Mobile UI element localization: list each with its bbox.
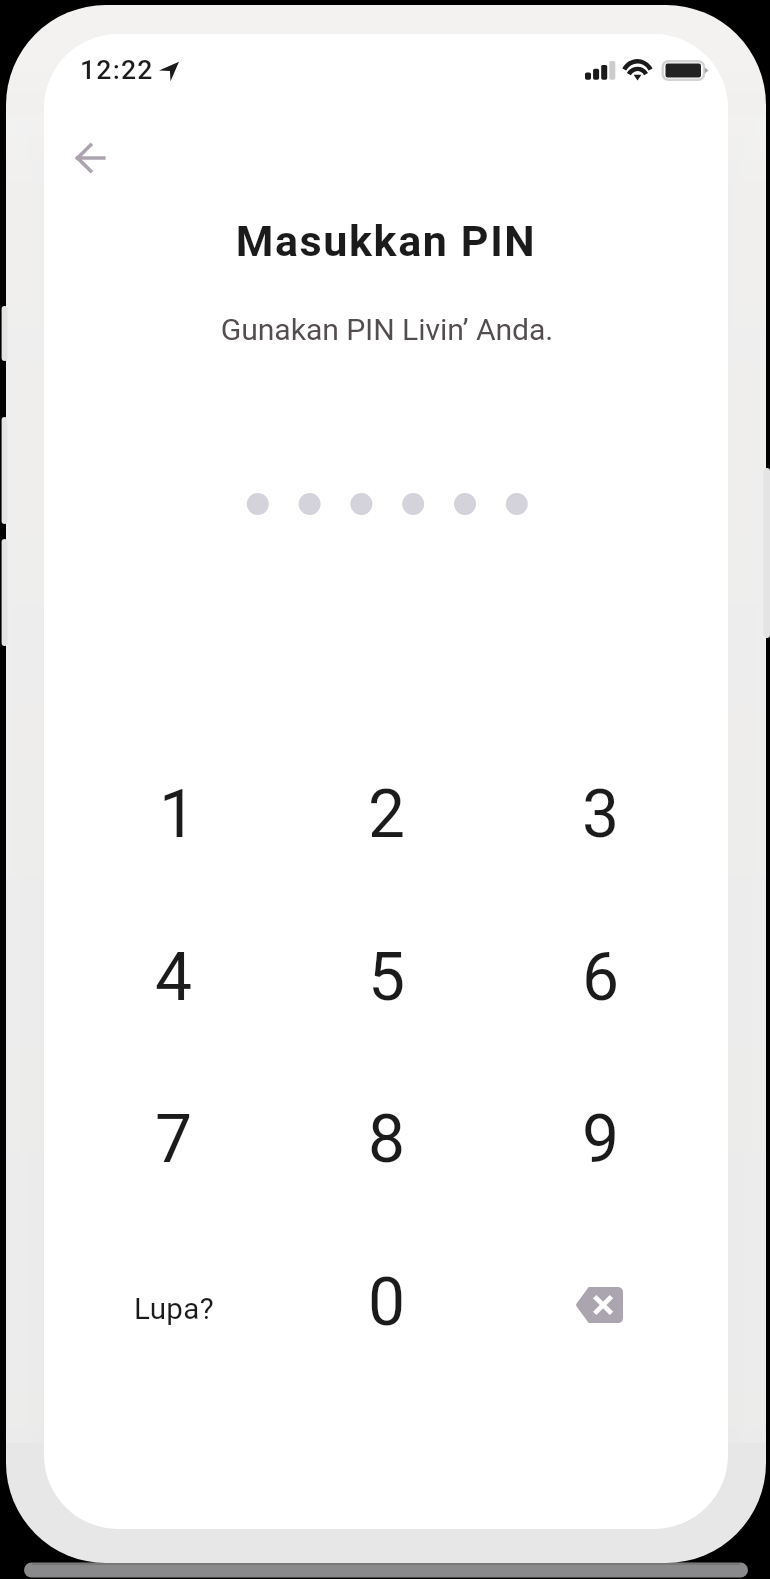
button[interactable]: 5 [280, 896, 494, 1059]
button[interactable]: 3 [494, 733, 708, 896]
button[interactable]: 2 [280, 733, 494, 896]
button[interactable]: 6 [494, 896, 708, 1059]
staticText: 6 [582, 939, 620, 1016]
staticText: 8 [368, 1101, 406, 1178]
button[interactable]: Back [57, 125, 122, 191]
staticText: 2 [368, 776, 406, 853]
button[interactable]: 8 [280, 1058, 494, 1221]
staticText: Gunakan PIN Livin’ Anda. [45, 312, 728, 347]
staticText: 4 [155, 939, 193, 1016]
staticText: Lupa? [134, 1292, 215, 1327]
staticText: Masukkan PIN [44, 216, 728, 266]
staticText: 0 [368, 1264, 406, 1341]
button[interactable]: Lupa? [67, 1221, 281, 1384]
staticText: 5 [368, 939, 406, 1016]
button[interactable]: 7 [67, 1058, 281, 1221]
staticText: 9 [582, 1101, 620, 1178]
staticText: 1 [159, 776, 197, 853]
staticText: 3 [582, 776, 620, 853]
button[interactable]: 9 [494, 1058, 708, 1221]
button[interactable]: 0 [280, 1221, 494, 1384]
button[interactable]: 1 [71, 733, 285, 896]
button[interactable]: 4 [67, 896, 281, 1059]
button[interactable]: Backspace [494, 1221, 708, 1384]
staticText: 12:22 [80, 54, 154, 85]
staticText: 7 [155, 1101, 193, 1178]
